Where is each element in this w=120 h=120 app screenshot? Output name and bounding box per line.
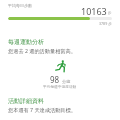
staticText: 10163 bbox=[81, 5, 107, 17]
other: Running bbox=[55, 60, 68, 73]
staticText: 3789 步 bbox=[99, 21, 112, 26]
staticText: 活動詳細資料 bbox=[8, 97, 44, 105]
staticText: 98 bbox=[50, 74, 60, 85]
staticText: 平均每日步數 bbox=[8, 3, 32, 8]
staticText: 您本週有 7 天達成活動目標。 bbox=[8, 106, 76, 113]
staticText: 您過去 2 週的活動量相當高。 bbox=[8, 47, 76, 54]
staticText: 平均每週中強度活動 bbox=[43, 84, 77, 89]
staticText: 分鐘 bbox=[62, 79, 71, 84]
staticText: 步 bbox=[108, 11, 112, 16]
staticText: 每週運動分析 bbox=[8, 38, 44, 46]
